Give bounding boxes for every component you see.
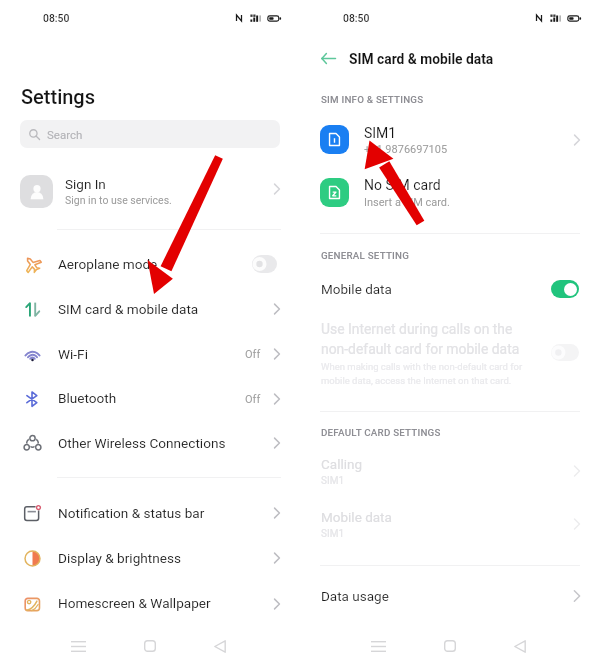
button[interactable] <box>300 168 600 214</box>
staticText: DEFAULT CARD SETTINGS <box>321 427 441 438</box>
button[interactable] <box>0 582 300 626</box>
staticText: 08:50 <box>343 12 370 24</box>
staticText: +91 9876697105 <box>364 143 448 156</box>
button[interactable] <box>20 120 280 148</box>
staticText: Mobile data <box>321 281 392 297</box>
button[interactable] <box>300 318 600 393</box>
button[interactable] <box>0 287 300 331</box>
button[interactable]: Back <box>500 628 540 664</box>
staticText: Homescreen & Wallpaper <box>58 595 211 611</box>
button[interactable]: Back <box>200 628 240 664</box>
staticText: Bluetooth <box>58 390 117 406</box>
button[interactable] <box>0 491 300 535</box>
staticText: GENERAL SETTING <box>321 250 410 261</box>
staticText: Calling <box>321 456 363 472</box>
staticText: Aeroplane mode <box>58 256 158 272</box>
staticText: Data usage <box>321 588 389 604</box>
staticText: When making calls with the non-default c… <box>321 361 523 372</box>
staticText: 08:50 <box>43 12 70 24</box>
staticText: SIM INFO & SETTINGS <box>321 94 424 105</box>
staticText: Sign in to use services. <box>65 194 172 206</box>
button[interactable] <box>300 272 600 312</box>
staticText: No SIM card <box>364 177 441 193</box>
staticText: Settings <box>21 85 96 108</box>
button[interactable] <box>0 421 300 465</box>
button[interactable]: Home <box>130 628 170 664</box>
staticText: Wi-Fi <box>58 346 88 362</box>
button[interactable] <box>0 377 300 421</box>
button[interactable] <box>300 115 600 163</box>
staticText: Off <box>245 393 261 406</box>
button[interactable] <box>0 163 300 213</box>
staticText: Mobile data <box>321 509 392 525</box>
button[interactable] <box>300 502 600 546</box>
button[interactable] <box>300 450 600 494</box>
staticText: Insert a SIM card. <box>364 196 450 209</box>
button[interactable]: Recents <box>358 628 398 664</box>
button[interactable] <box>0 332 300 376</box>
staticText: Search <box>47 128 83 141</box>
staticText: Sign In <box>65 176 106 192</box>
button[interactable] <box>0 242 300 286</box>
button[interactable]: Back <box>309 39 347 77</box>
staticText: SIM1 <box>364 125 397 141</box>
staticText: Use Internet during calls on the <box>321 321 513 337</box>
staticText: SIM1 <box>321 528 345 540</box>
staticText: mobile data, access the Internet on that… <box>321 375 512 386</box>
staticText: SIM1 <box>321 475 345 487</box>
staticText: non-default card for mobile data <box>321 341 520 357</box>
button[interactable]: Recents <box>58 628 98 664</box>
staticText: Notification & status bar <box>58 505 205 521</box>
button[interactable]: Home <box>430 628 470 664</box>
staticText: Off <box>245 348 261 361</box>
button[interactable] <box>300 580 600 620</box>
staticText: Other Wireless Connections <box>58 435 226 451</box>
staticText: SIM card & mobile data <box>349 51 494 67</box>
button[interactable] <box>0 536 300 580</box>
staticText: Display & brightness <box>58 550 181 566</box>
staticText: SIM card & mobile data <box>58 301 199 317</box>
